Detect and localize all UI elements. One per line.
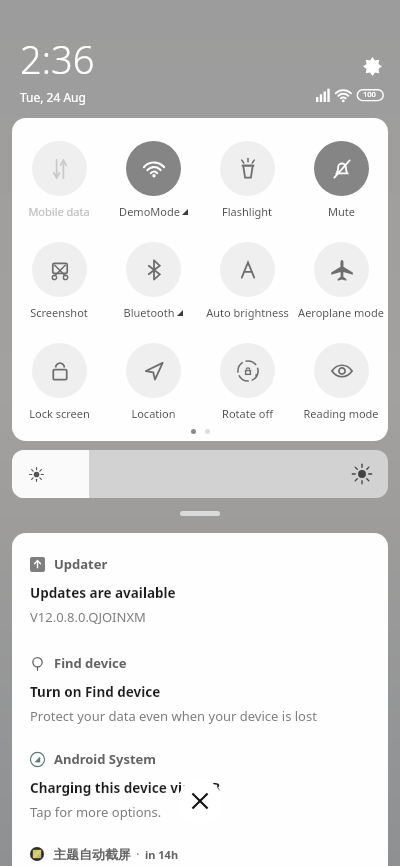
staticText: Updates are available xyxy=(30,584,176,602)
staticText: 2:36 xyxy=(20,33,95,85)
button[interactable]: Bluetooth xyxy=(106,242,200,320)
button[interactable]: Mobile data xyxy=(12,141,106,219)
staticText: Protect your data even when your device … xyxy=(30,707,317,725)
staticText: Updater xyxy=(54,555,108,573)
staticText: · xyxy=(136,845,140,863)
button[interactable]: Reading mode xyxy=(294,343,388,421)
staticText: Find device xyxy=(54,654,127,672)
button[interactable]: DemoMode xyxy=(106,141,200,219)
button[interactable]: Rotate off xyxy=(200,343,294,421)
staticText: V12.0.8.0.QJOINXM xyxy=(30,608,146,626)
staticText: Android System xyxy=(54,750,157,768)
button[interactable]: Flashlight xyxy=(200,141,294,219)
staticText: DemoMode xyxy=(119,204,180,219)
button[interactable]: Location xyxy=(106,343,200,421)
staticText: Auto brightness xyxy=(206,305,289,320)
staticText: Tue, 24 Aug xyxy=(20,89,86,105)
staticText: Mobile data xyxy=(28,204,90,219)
button[interactable]: Clear all notifications xyxy=(178,779,222,823)
staticText: in 14h xyxy=(145,847,179,862)
staticText: Aeroplane mode xyxy=(298,305,384,320)
staticText: Tap for more options. xyxy=(30,803,162,821)
button[interactable]: Lock screen xyxy=(12,343,106,421)
button[interactable]: Auto brightness xyxy=(200,242,294,320)
button[interactable]: Brightness xyxy=(12,450,388,498)
staticText: Location xyxy=(131,406,176,421)
button[interactable]: Screenshot xyxy=(12,242,106,320)
staticText: Rotate off xyxy=(222,406,273,421)
button[interactable]: Settings xyxy=(356,50,388,82)
staticText: 100 xyxy=(363,89,376,99)
staticText: Bluetooth xyxy=(123,305,175,320)
staticText: Charging this device via USB xyxy=(30,779,221,797)
staticText: Screenshot xyxy=(30,305,88,320)
staticText: Flashlight xyxy=(222,204,272,219)
button[interactable]: Aeroplane mode xyxy=(294,242,388,320)
staticText: Reading mode xyxy=(303,406,379,421)
button[interactable]: Mute xyxy=(294,141,388,219)
staticText: Lock screen xyxy=(29,406,90,421)
staticText: Mute xyxy=(328,204,355,219)
staticText: Turn on Find device xyxy=(30,683,161,701)
staticText: 主题自动截屏 xyxy=(53,846,131,862)
